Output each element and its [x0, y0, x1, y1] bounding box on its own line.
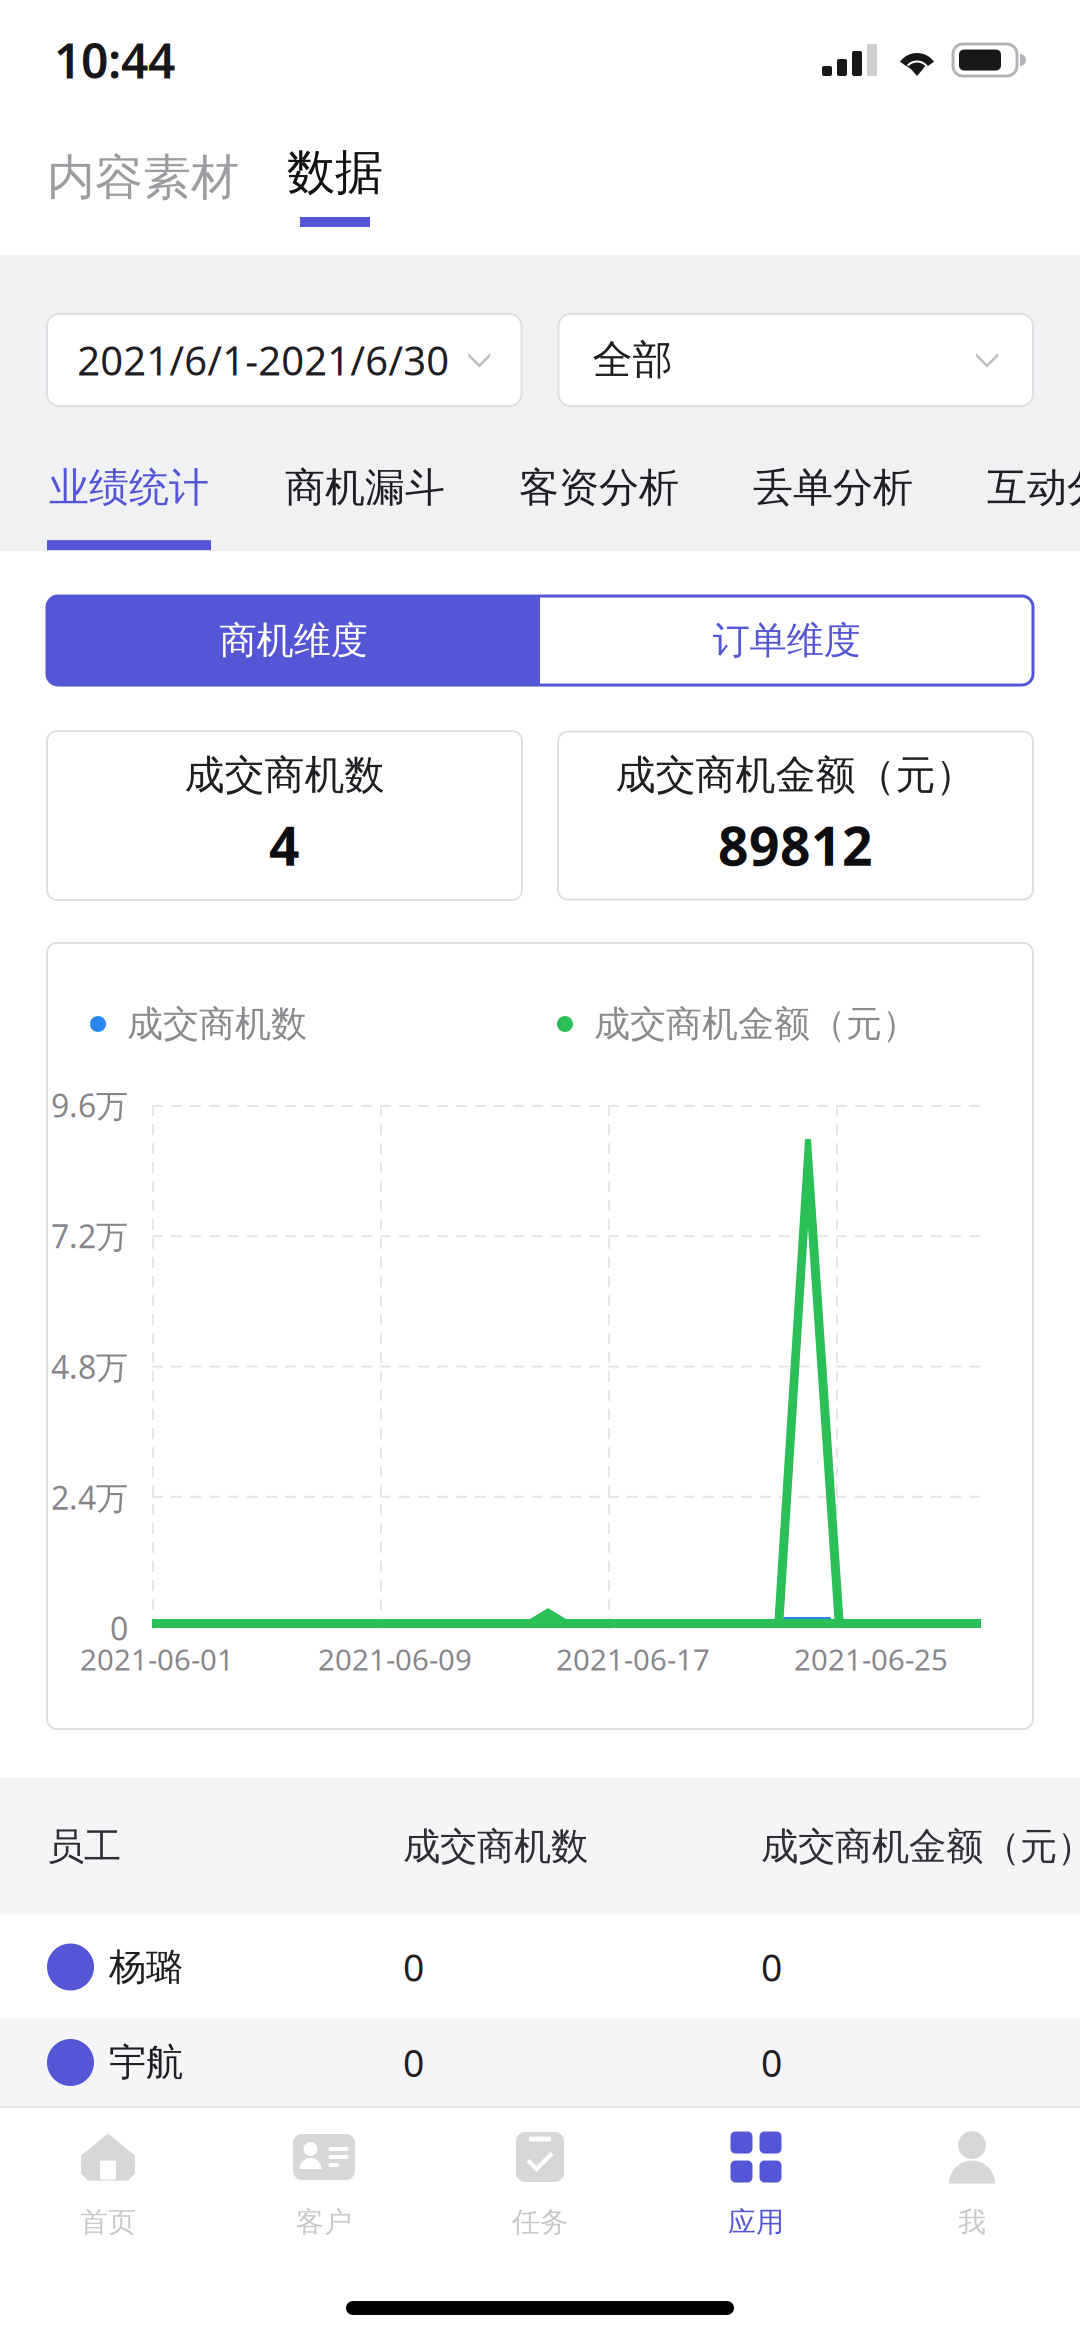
staticText: 商机漏斗: [285, 463, 445, 512]
staticText: 4.8万: [51, 1345, 128, 1388]
staticText: 0: [110, 1607, 128, 1649]
button[interactable]: 客资分析: [519, 406, 679, 551]
staticText: 2021-06-09: [318, 1639, 472, 1678]
staticText: 2.4万: [51, 1476, 128, 1518]
staticText: 2021-06-17: [556, 1639, 710, 1678]
staticText: 数据: [287, 143, 383, 202]
staticText: 宇航: [109, 2040, 183, 2085]
button[interactable]: 订单维度: [540, 596, 1033, 685]
staticText: 2021/6/1-2021/6/30: [77, 333, 449, 386]
staticText: 订单维度: [712, 618, 860, 663]
staticText: 2021-06-25: [794, 1639, 948, 1678]
staticText: 互动分析: [987, 463, 1080, 512]
staticText: 商机维度: [219, 618, 367, 663]
staticText: 7.2万: [51, 1214, 128, 1257]
staticText: 内容素材: [47, 148, 239, 207]
staticText: 全部: [592, 335, 672, 384]
staticText: 9.6万: [51, 1084, 128, 1126]
staticText: 2021-06-01: [80, 1639, 234, 1678]
button[interactable]: 互动分析: [987, 406, 1080, 551]
button[interactable]: 客户: [216, 2108, 432, 2254]
button[interactable]: 杨璐: [0, 1915, 1080, 2019]
staticText: 成交商机金额（元）: [615, 750, 975, 800]
button[interactable]: 宇航: [0, 2019, 1080, 2106]
button[interactable]: 2021/6/1-2021/6/30: [47, 314, 521, 406]
button[interactable]: 业绩统计: [47, 406, 211, 551]
button[interactable]: 商机漏斗: [285, 406, 445, 551]
button[interactable]: 丢单分析: [753, 406, 913, 551]
staticText: 0: [403, 1942, 424, 1992]
staticText: 成交商机金额（元）: [594, 1002, 918, 1046]
staticText: 我: [958, 2205, 986, 2239]
staticText: 任务: [512, 2205, 568, 2239]
button[interactable]: 全部: [558, 314, 1033, 406]
staticText: 首页: [80, 2205, 136, 2239]
staticText: 成交商机数: [184, 750, 384, 800]
staticText: 员工: [47, 1824, 121, 1869]
button[interactable]: 应用: [648, 2108, 864, 2254]
button[interactable]: 任务: [432, 2108, 648, 2254]
staticText: 0: [761, 2038, 782, 2087]
staticText: 10:44: [54, 28, 175, 92]
button[interactable]: 内容素材: [47, 148, 239, 232]
staticText: 应用: [728, 2205, 784, 2239]
staticText: 杨璐: [109, 1944, 183, 1990]
button[interactable]: 数据: [287, 143, 383, 232]
staticText: 成交商机金额（元）: [761, 1824, 1080, 1869]
staticText: 成交商机数: [403, 1824, 588, 1869]
staticText: 0: [403, 2038, 424, 2087]
staticText: 89812: [718, 810, 873, 880]
staticText: 客户: [296, 2205, 352, 2239]
staticText: 业绩统计: [49, 463, 209, 512]
staticText: 丢单分析: [753, 463, 913, 512]
staticText: 4: [269, 810, 300, 880]
staticText: 客资分析: [519, 463, 679, 512]
button[interactable]: 首页: [0, 2108, 216, 2254]
staticText: 0: [761, 1942, 782, 1992]
button[interactable]: 商机维度: [47, 596, 540, 685]
staticText: 成交商机数: [127, 1002, 307, 1046]
button[interactable]: 我: [864, 2108, 1080, 2254]
